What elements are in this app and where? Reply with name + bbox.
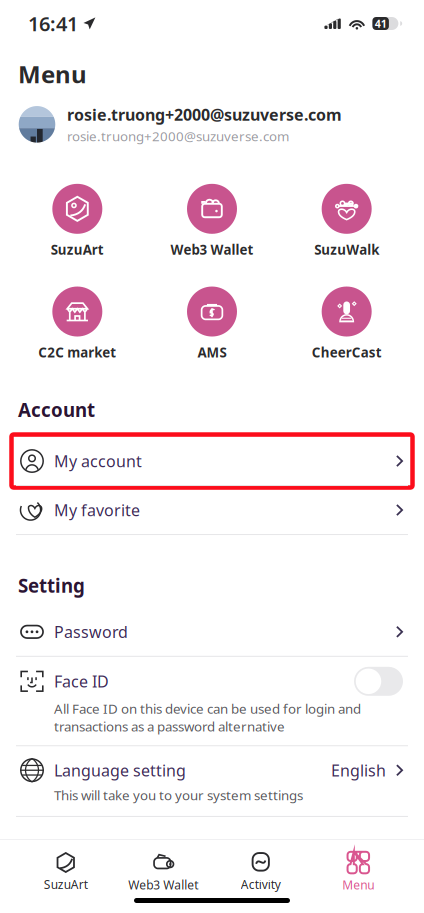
staticText: Web3 Wallet: [128, 877, 198, 893]
button[interactable]: C2C market: [10, 286, 145, 361]
staticText: Menu: [18, 58, 87, 90]
button[interactable]: Password: [0, 608, 424, 656]
button[interactable]: Web3 Wallet: [145, 184, 279, 258]
staticText: My account: [54, 450, 142, 472]
button[interactable]: Face ID: [354, 667, 403, 696]
button[interactable]: Activity: [212, 851, 309, 892]
button[interactable]: SuzuWalk: [279, 184, 414, 258]
staticText: SuzuWalk: [314, 241, 379, 258]
staticText: Web3 Wallet: [170, 241, 253, 258]
staticText: Menu: [342, 877, 374, 893]
staticText: rosie.truong+2000@suzuverse.com: [67, 127, 289, 145]
staticText: AMS: [197, 343, 226, 361]
button[interactable]: Face ID: [0, 657, 424, 745]
staticText: Setting: [18, 573, 85, 598]
staticText: Face ID: [54, 671, 109, 692]
button[interactable]: Language setting: [0, 746, 424, 816]
staticText: CheerCast: [312, 343, 382, 361]
button[interactable]: SuzuArt: [17, 851, 114, 892]
staticText: Account: [18, 397, 95, 422]
button[interactable]: SuzuArt: [10, 184, 145, 258]
button[interactable]: Menu: [309, 851, 407, 893]
staticText: Language setting: [54, 760, 186, 781]
staticText: My favorite: [54, 499, 140, 521]
staticText: Password: [54, 621, 128, 642]
staticText: C2C market: [38, 343, 116, 361]
staticText: English: [331, 760, 386, 781]
staticText: 16:41: [28, 10, 78, 37]
button[interactable]: AMS: [145, 286, 279, 361]
button[interactable]: Web3 Wallet: [114, 851, 212, 893]
button[interactable]: My favorite: [0, 486, 424, 534]
staticText: rosie.truong+2000@suzuverse.com: [67, 104, 342, 125]
staticText: 41: [375, 16, 387, 31]
button[interactable]: My account: [0, 437, 424, 485]
staticText: SuzuArt: [51, 241, 104, 258]
staticText: Activity: [241, 876, 281, 892]
button[interactable]: CheerCast: [279, 286, 414, 361]
staticText: All Face ID on this device can be used f…: [54, 700, 361, 735]
staticText: This will take you to your system settin…: [54, 786, 303, 804]
staticText: SuzuArt: [44, 876, 88, 892]
